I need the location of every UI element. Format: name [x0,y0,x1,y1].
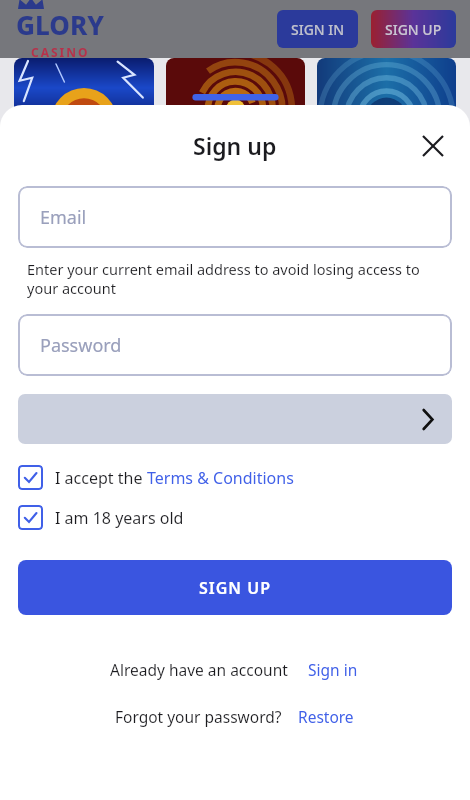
staticText: GLORY [16,7,104,42]
staticText: Sign in [308,659,358,680]
button[interactable]: I am 18 years old [0,501,470,534]
button[interactable]: SIGN UP [18,560,452,615]
button[interactable]: SIGN IN [277,10,358,48]
button[interactable] [166,58,305,118]
staticText: SIGN UP [199,577,271,599]
staticText: Restore [298,706,354,727]
staticText: Email [40,205,87,230]
staticText: I accept the [55,467,147,489]
button[interactable]: I accept the [0,461,470,494]
button[interactable]: SIGN UP [371,10,456,48]
staticText: Password [40,333,122,358]
staticText: CASINO [31,44,90,58]
staticText: Forgot your password? [115,706,282,727]
staticText: Terms & Conditions [147,467,294,489]
button[interactable]: Select bonus [18,394,452,444]
button[interactable] [14,58,154,118]
staticText: Already have an account [110,659,288,680]
staticText: I am 18 years old [55,507,184,529]
button[interactable]: Password [18,314,452,376]
staticText: Enter your current email address to avoi… [27,259,443,298]
button[interactable] [317,58,456,118]
staticText: SIGN IN [291,20,345,39]
button[interactable]: Email [18,186,452,248]
button[interactable]: Restore [296,704,356,729]
staticText: Sign up [193,130,277,161]
staticText: SIGN UP [385,20,442,39]
button[interactable]: Sign in [306,657,360,682]
button[interactable]: Close [416,129,450,163]
